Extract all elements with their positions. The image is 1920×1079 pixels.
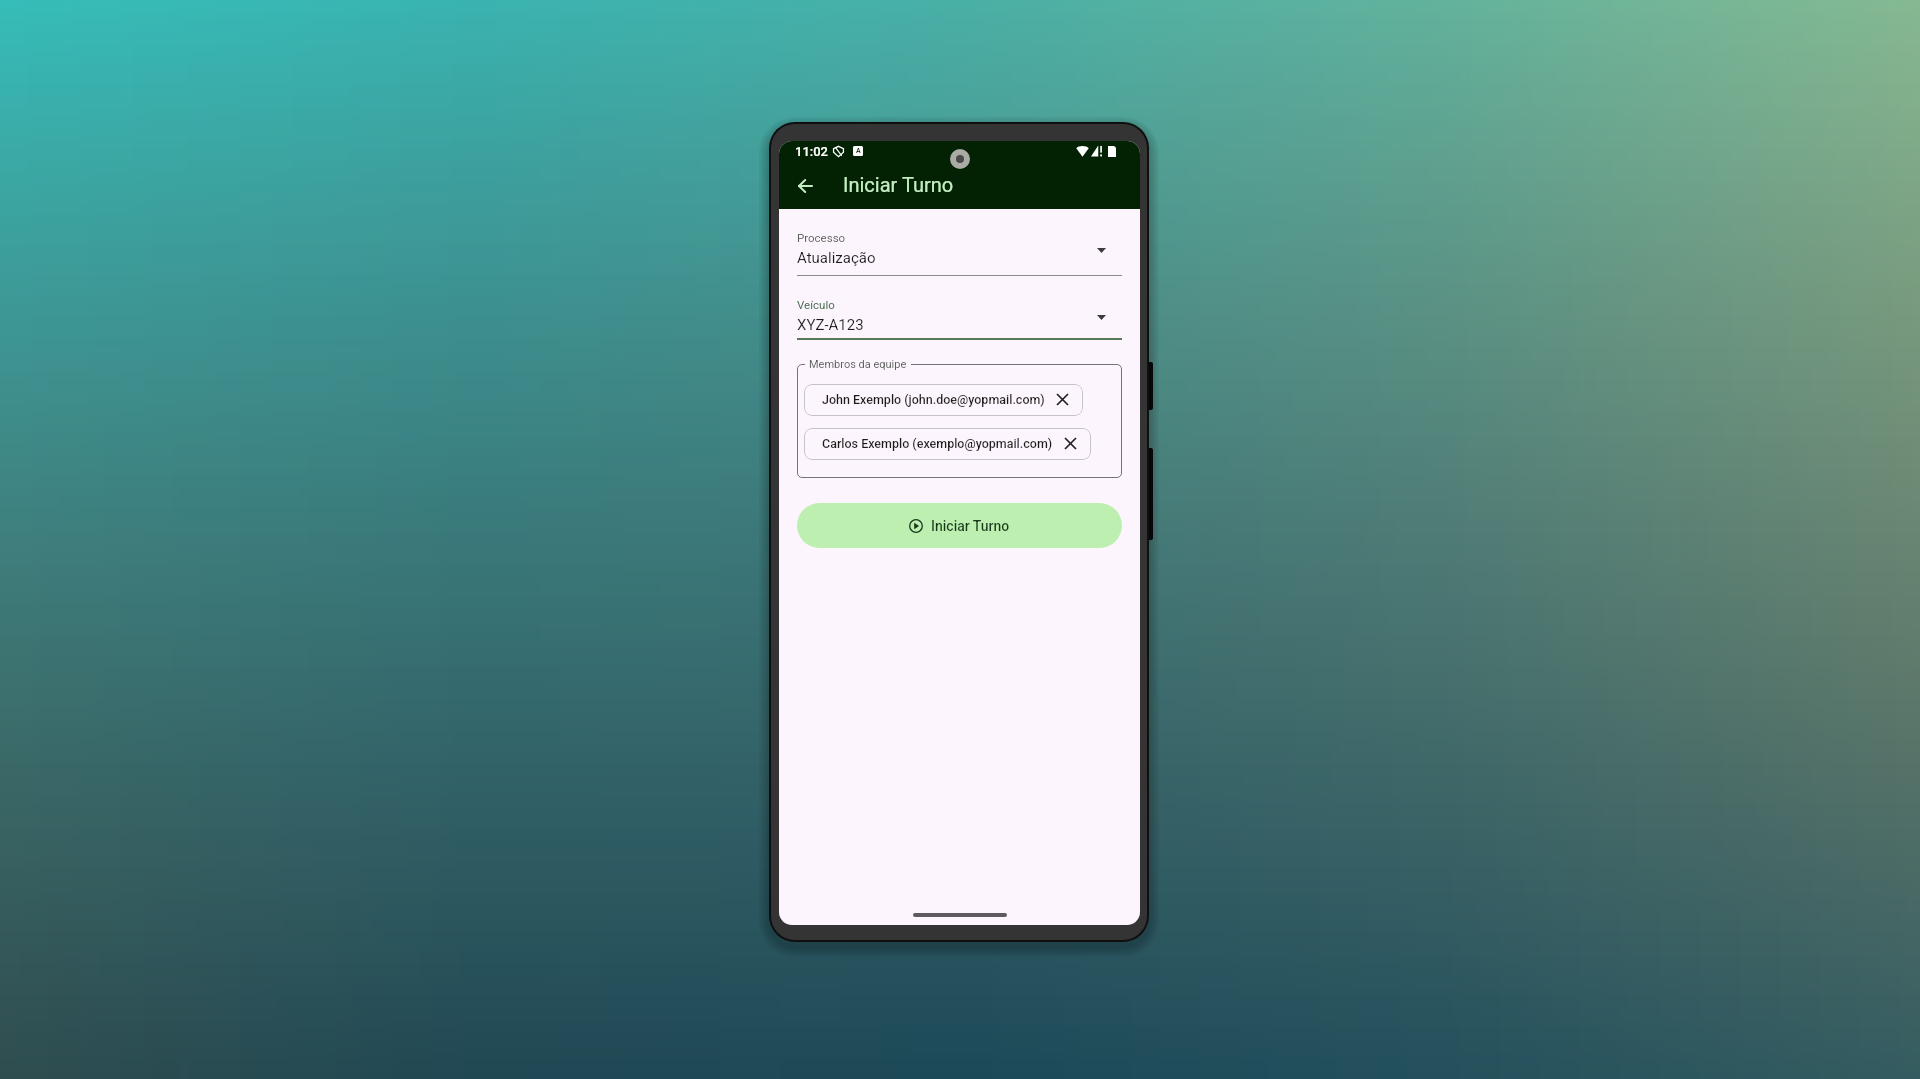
button[interactable]: John Exemplo (john.doe@yopmail.com) xyxy=(804,384,1083,416)
staticText: Iniciar Turno xyxy=(931,518,1010,534)
staticText: A xyxy=(856,147,861,155)
staticText: 11:02 xyxy=(795,144,828,159)
button[interactable]: Remover xyxy=(1063,436,1078,451)
staticText: Membros da equipe xyxy=(809,358,907,371)
staticText: John Exemplo (john.doe@yopmail.com) xyxy=(822,392,1045,407)
staticText: Processo xyxy=(797,231,846,244)
staticText: Iniciar Turno xyxy=(843,173,954,196)
staticText: Carlos Exemplo (exemplo@yopmail.com) xyxy=(822,436,1053,451)
button[interactable]: Atualização xyxy=(797,249,1122,267)
staticText: XYZ-A123 xyxy=(797,316,864,334)
button[interactable]: Iniciar Turno xyxy=(797,503,1122,548)
button[interactable]: Voltar xyxy=(787,168,823,204)
staticText: Veículo xyxy=(797,298,835,311)
button[interactable]: Carlos Exemplo (exemplo@yopmail.com) xyxy=(804,428,1091,460)
staticText: Atualização xyxy=(797,249,876,267)
button[interactable]: Remover xyxy=(1055,392,1070,407)
button[interactable]: XYZ-A123 xyxy=(797,316,1122,334)
